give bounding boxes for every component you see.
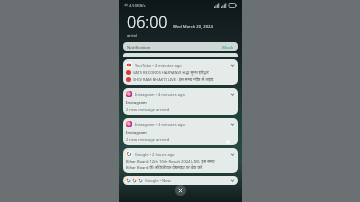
staticText: Wed March 20, 2024: [173, 24, 213, 30]
staticText: Instagram • 3 minutes ago: [135, 122, 185, 127]
staticText: Instagram: [126, 100, 147, 106]
button[interactable]: Instagram • 4 minutes ago: [123, 88, 238, 115]
button[interactable]: Google • 2 hours ago: [123, 148, 238, 173]
staticText: Bihar Board 12th 10th Result 2024 LIVE: …: [126, 159, 215, 164]
button[interactable]: [123, 53, 238, 57]
staticText: Instagram: [126, 130, 147, 136]
staticText: Instagram • 4 minutes ago: [135, 92, 185, 97]
button[interactable]: Notification: [123, 42, 238, 51]
staticText: Notification: [127, 44, 151, 50]
staticText: 06:00: [127, 11, 168, 33]
button[interactable]: YouTube • 4 minutes ago: [123, 59, 238, 85]
staticText: Google • Now: [145, 178, 171, 183]
staticText: 4.50KB/s: [129, 3, 146, 8]
staticText: Block: [222, 44, 234, 50]
button[interactable]: Google • Now: [123, 176, 238, 185]
staticText: YouTube • 4 minutes ago: [135, 63, 182, 68]
button[interactable]: Instagram • 3 minutes ago: [123, 118, 238, 145]
staticText: VATS RECORDS HARYANVI श्रद्धा सुमन हरिद्…: [133, 70, 209, 75]
staticText: 2 new message arrived: [126, 137, 170, 142]
staticText: Google • 2 hours ago: [135, 152, 175, 157]
staticText: SHIV RAM BHAKTI LIVE : इस समय मंदिर से ल…: [133, 77, 214, 82]
staticText: Bihar Board की ऑफिशियल वेबसाइट पर चेक कर…: [126, 165, 203, 170]
staticText: 2 new message arrived: [126, 107, 170, 112]
button[interactable]: Clear all notifications: [175, 185, 186, 196]
staticText: airtel: [127, 33, 138, 39]
